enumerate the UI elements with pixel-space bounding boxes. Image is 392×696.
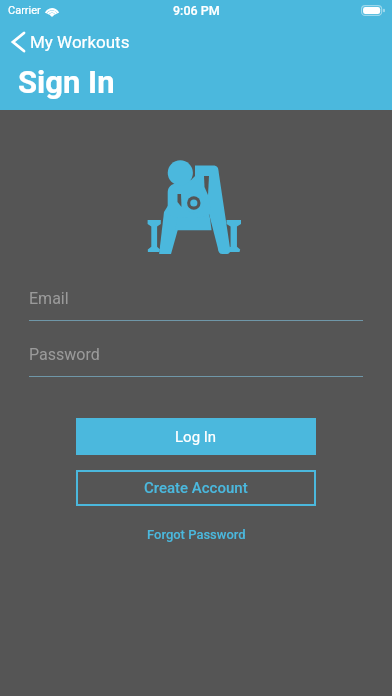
staticText: Log In <box>175 428 217 446</box>
button[interactable]: Password <box>29 345 363 377</box>
staticText: Carrier <box>8 4 41 17</box>
button[interactable]: Log In <box>76 418 316 455</box>
staticText: Password <box>29 345 100 364</box>
button[interactable]: Create Account <box>76 470 316 506</box>
staticText: 9:06 PM <box>173 3 220 18</box>
staticText: Sign In <box>18 64 115 100</box>
other: Back <box>13 33 24 51</box>
button[interactable]: Forgot Password <box>139 524 254 545</box>
staticText: Forgot Password <box>147 527 246 542</box>
button[interactable]: Back <box>13 31 392 53</box>
button[interactable]: Email <box>29 289 363 321</box>
staticText: Email <box>29 289 69 308</box>
staticText: My Workouts <box>30 32 130 52</box>
staticText: Create Account <box>144 479 248 497</box>
